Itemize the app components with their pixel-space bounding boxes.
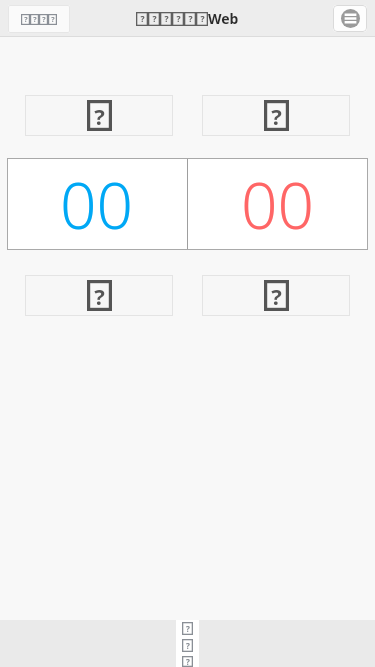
button[interactable]: Score control <box>25 95 173 136</box>
staticText: ? <box>140 13 145 25</box>
staticText: ? <box>51 15 55 25</box>
staticText: ? <box>176 13 181 25</box>
button[interactable]: 00 <box>188 158 368 250</box>
staticText: ? <box>24 15 28 25</box>
staticText: ? <box>271 101 282 131</box>
staticText: ? <box>200 13 205 25</box>
staticText: ? <box>94 101 105 131</box>
button[interactable]: Menu <box>333 5 367 32</box>
staticText: ? <box>188 13 193 25</box>
staticText: ? <box>271 281 282 311</box>
button[interactable]: Score control <box>202 275 350 316</box>
button[interactable]: Footer menu <box>176 620 199 667</box>
staticText: ? <box>42 15 46 25</box>
staticText: ? <box>33 15 37 25</box>
staticText: ? <box>152 13 157 25</box>
button[interactable]: Score control <box>202 95 350 136</box>
staticText: Web <box>208 9 239 28</box>
button[interactable]: Score control <box>25 275 173 316</box>
staticText: ? <box>186 640 190 651</box>
button[interactable]: Back <box>8 5 70 33</box>
staticText: 00 <box>60 161 134 248</box>
staticText: ? <box>186 656 190 667</box>
staticText: ? <box>94 281 105 311</box>
button[interactable]: 00 <box>7 158 187 250</box>
staticText: ? <box>186 623 190 634</box>
staticText: ? <box>164 13 169 25</box>
staticText: 00 <box>241 161 315 248</box>
